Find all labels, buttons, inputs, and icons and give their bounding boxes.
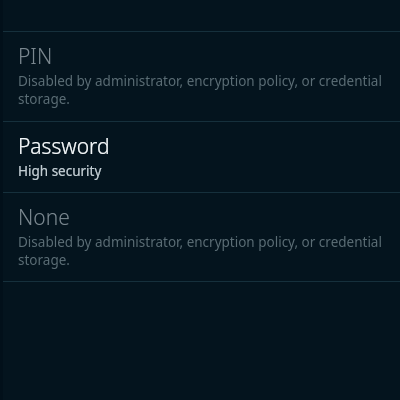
staticText: Disabled by administrator, encryption po…: [18, 72, 382, 108]
staticText: PIN: [18, 42, 53, 71]
staticText: Disabled by administrator, encryption po…: [18, 233, 382, 269]
button[interactable]: Password: [0, 122, 400, 192]
button[interactable]: PIN: [0, 32, 400, 121]
staticText: High security: [18, 162, 102, 180]
staticText: None: [18, 203, 70, 232]
button[interactable]: None: [0, 193, 400, 281]
staticText: Password: [18, 132, 110, 161]
